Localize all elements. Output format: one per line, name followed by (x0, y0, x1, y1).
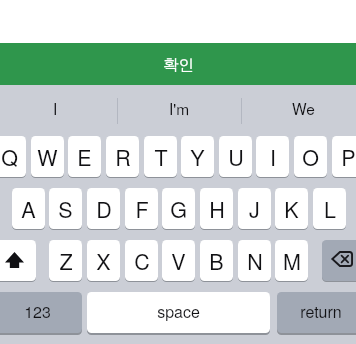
staticText: N (247, 245, 263, 276)
button[interactable]: V (162, 240, 195, 281)
staticText: M (283, 245, 301, 276)
button[interactable]: R (106, 136, 139, 177)
button[interactable]: S (49, 188, 82, 229)
button[interactable]: 123 (0, 292, 82, 333)
button[interactable]: C (125, 240, 158, 281)
button[interactable]: Backspace (322, 240, 356, 281)
button[interactable]: Shift (0, 240, 36, 281)
button[interactable]: return (277, 292, 356, 333)
staticText: A (21, 193, 36, 224)
staticText: B (209, 245, 224, 276)
staticText: R (115, 141, 131, 172)
staticText: L (324, 193, 336, 224)
button[interactable]: U (219, 136, 252, 177)
staticText: Y (190, 141, 205, 172)
button[interactable]: I (0, 85, 117, 131)
button[interactable]: J (238, 188, 271, 229)
staticText: C (134, 245, 150, 276)
staticText: H (209, 193, 225, 224)
button[interactable]: O (294, 136, 327, 177)
button[interactable]: H (200, 188, 233, 229)
button[interactable]: K (275, 188, 308, 229)
button[interactable]: Q (0, 136, 26, 177)
staticText: E (77, 141, 92, 172)
staticText: P (341, 141, 356, 172)
staticText: X (96, 245, 111, 276)
button[interactable]: M (275, 240, 308, 281)
staticText: W (37, 141, 58, 172)
button[interactable]: L (313, 188, 346, 229)
button[interactable]: X (87, 240, 120, 281)
button[interactable]: A (12, 188, 45, 229)
staticText: O (302, 141, 319, 172)
button[interactable]: B (200, 240, 233, 281)
button[interactable]: I'm (117, 85, 241, 131)
staticText: Z (59, 245, 73, 276)
staticText: I (53, 97, 58, 119)
button[interactable]: W (31, 136, 64, 177)
button[interactable]: space (87, 292, 270, 333)
staticText: G (170, 193, 187, 224)
staticText: U (228, 141, 244, 172)
staticText: space (157, 300, 200, 323)
button[interactable]: T (144, 136, 177, 177)
staticText: I'm (169, 97, 190, 119)
button[interactable]: We (241, 85, 356, 131)
staticText: F (135, 193, 149, 224)
staticText: J (249, 193, 260, 224)
button[interactable]: Y (181, 136, 214, 177)
staticText: We (292, 97, 315, 119)
staticText: 123 (24, 300, 51, 323)
staticText: S (58, 193, 73, 224)
button[interactable]: G (162, 188, 195, 229)
button[interactable]: N (238, 240, 271, 281)
staticText: D (96, 193, 112, 224)
button[interactable]: Z (49, 240, 82, 281)
staticText: Q (1, 141, 18, 172)
button[interactable]: I (256, 136, 289, 177)
staticText: I (270, 141, 276, 172)
staticText: T (154, 141, 168, 172)
button[interactable]: E (68, 136, 101, 177)
staticText: V (171, 245, 186, 276)
staticText: 확인 (163, 55, 194, 75)
staticText: return (300, 300, 342, 323)
staticText: K (284, 193, 299, 224)
button[interactable]: P (332, 136, 356, 177)
button[interactable]: D (87, 188, 120, 229)
button[interactable]: 확인 (0, 43, 356, 86)
button[interactable]: F (125, 188, 158, 229)
